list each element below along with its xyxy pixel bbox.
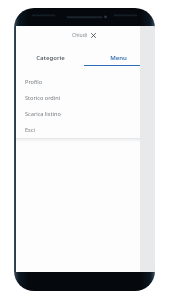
button[interactable]: Menu: [84, 50, 153, 66]
other: Chiudi: [90, 32, 97, 39]
staticText: Menu: [110, 54, 127, 62]
staticText: Esci: [25, 126, 35, 134]
staticText: Chiudi: [72, 32, 87, 39]
staticText: Storico ordini: [25, 94, 61, 102]
staticText: Scarica listino: [25, 110, 61, 118]
button[interactable]: Esci: [16, 122, 153, 138]
button[interactable]: Chiudi: [16, 28, 153, 42]
staticText: Categorie: [36, 54, 65, 62]
button[interactable]: Categorie: [16, 50, 84, 66]
button[interactable]: Profilo: [16, 74, 153, 90]
button[interactable]: Storico ordini: [16, 90, 153, 106]
staticText: Profilo: [25, 78, 43, 86]
button[interactable]: Scarica listino: [16, 106, 153, 122]
